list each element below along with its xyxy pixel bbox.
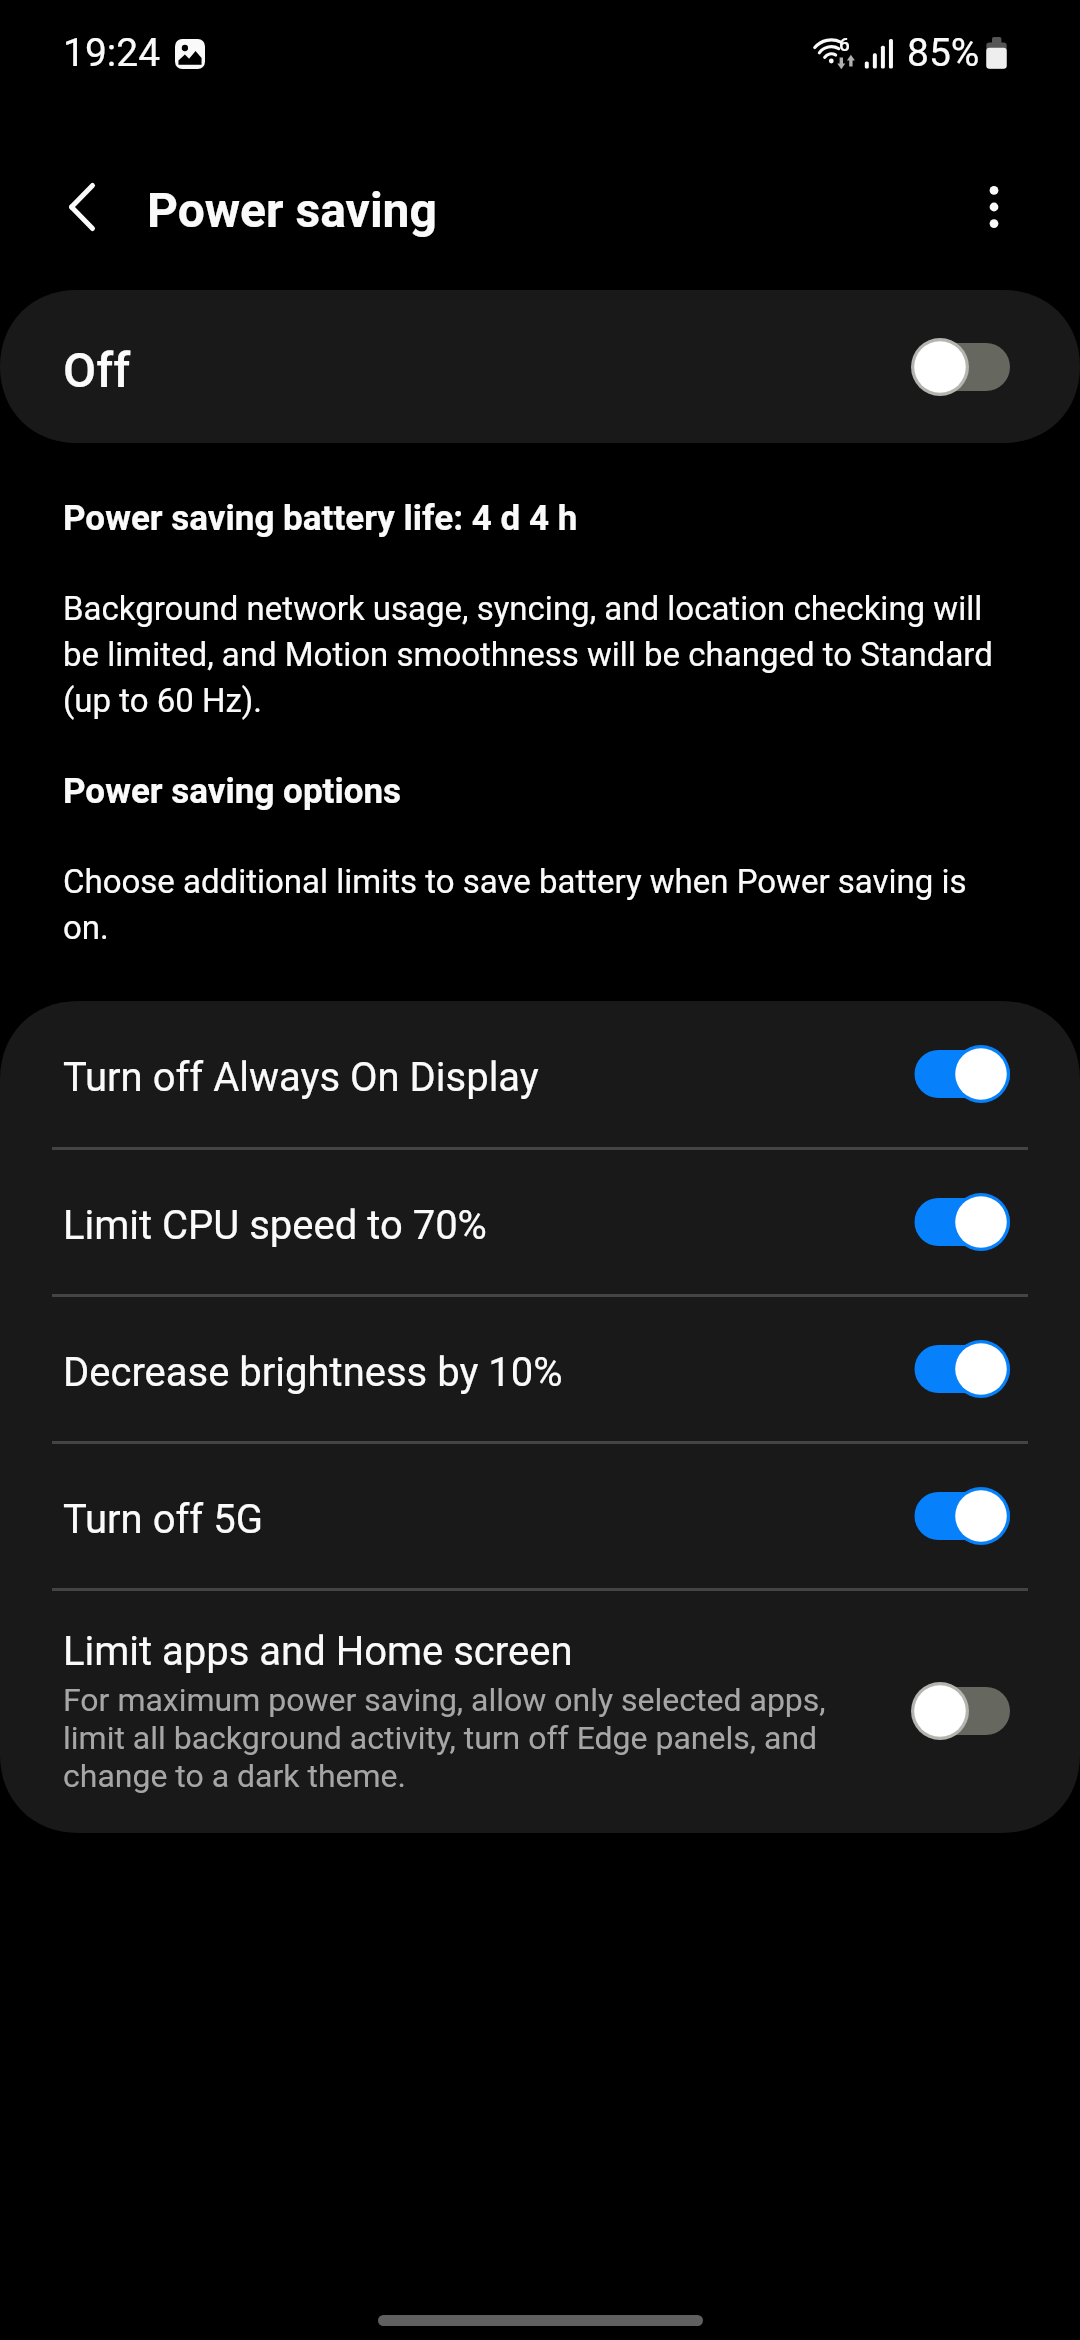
staticText: Power saving <box>147 182 437 238</box>
staticText: Turn off Always On Display <box>63 1054 539 1101</box>
button[interactable]: Turn off Always On Display <box>0 1001 1080 1147</box>
staticText: Limit apps and Home screen <box>63 1628 573 1675</box>
staticText: Power saving battery life: 4 d 4 h <box>63 498 578 539</box>
button[interactable]: More options <box>950 163 1038 251</box>
button[interactable]: Off <box>0 290 1080 443</box>
staticText: Off <box>63 342 131 398</box>
staticText: Decrease brightness by 10% <box>63 1349 563 1396</box>
staticText: Power saving options <box>63 771 402 812</box>
staticText: Turn off 5G <box>63 1496 263 1543</box>
staticText: 6 <box>839 33 850 55</box>
button[interactable]: Turn off 5G <box>0 1444 1080 1588</box>
button[interactable]: Decrease brightness by 10% <box>0 1297 1080 1441</box>
staticText: Limit CPU speed to 70% <box>63 1202 487 1249</box>
staticText: 85% <box>907 30 980 76</box>
staticText: For maximum power saving, allow only sel… <box>63 1681 853 1795</box>
staticText: Background network usage, syncing, and l… <box>63 584 1013 722</box>
staticText: Choose additional limits to save battery… <box>63 857 1013 949</box>
button[interactable]: Limit CPU speed to 70% <box>0 1150 1080 1294</box>
button[interactable]: Navigate up <box>38 163 126 251</box>
staticText: 19:24 <box>63 30 161 76</box>
button[interactable]: Limit apps and Home screen <box>0 1591 1080 1831</box>
